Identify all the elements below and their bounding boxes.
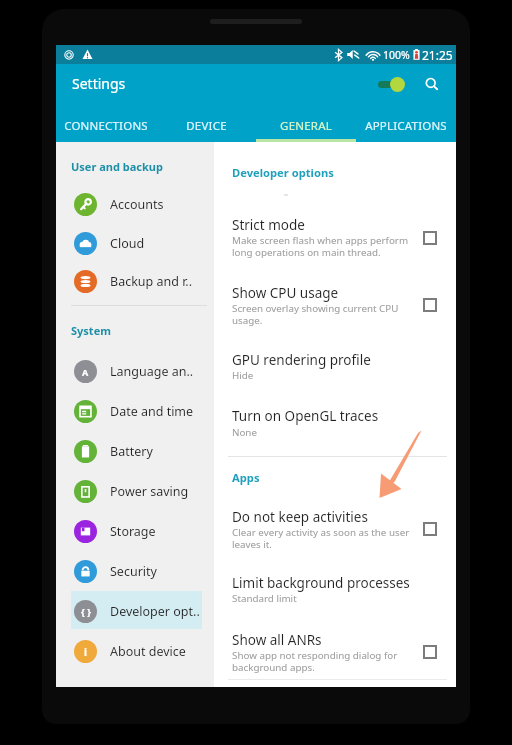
staticText: i: [84, 645, 87, 659]
staticText: Limit background processes: [232, 574, 410, 592]
button[interactable]: Cloud: [56, 224, 214, 262]
button[interactable]: Strict mode: [232, 216, 432, 234]
button[interactable]: APPLICATIONS: [356, 109, 456, 142]
staticText: Date and time: [110, 403, 194, 420]
button[interactable]: Limit background processes: [232, 574, 432, 592]
button[interactable]: Do not keep activities: [232, 508, 432, 526]
staticText: Developer opt..: [110, 603, 200, 620]
button[interactable]: A: [56, 352, 214, 390]
button[interactable]: Date and time: [56, 392, 214, 430]
button[interactable]: Show all ANRs: [423, 645, 437, 659]
button[interactable]: Show CPU usage: [232, 284, 432, 302]
button[interactable]: Show all ANRs: [232, 631, 432, 649]
staticText: None: [232, 426, 257, 439]
staticText: User and backup: [71, 159, 163, 174]
staticText: Settings: [72, 74, 126, 93]
button[interactable]: CONNECTIONS: [56, 109, 156, 142]
button[interactable]: Accounts: [56, 185, 214, 223]
staticText: Do not keep activities: [232, 508, 368, 526]
staticText: A: [82, 366, 89, 378]
staticText: Storage: [110, 523, 156, 540]
staticText: Backup and r..: [110, 273, 193, 290]
button[interactable]: GPU rendering profile: [232, 351, 432, 369]
staticText: Developer options: [232, 165, 334, 180]
staticText: Show app not responding dialog for backg…: [232, 649, 398, 674]
staticText: GENERAL: [280, 118, 332, 134]
staticText: Turn on OpenGL traces: [232, 407, 379, 425]
button[interactable]: Power saving: [56, 472, 214, 510]
staticText: Battery: [110, 443, 153, 460]
button[interactable]: Storage: [56, 512, 214, 550]
button[interactable]: Security: [56, 552, 214, 590]
staticText: Hide: [232, 369, 254, 382]
button[interactable]: { }: [56, 592, 214, 630]
staticText: Screen overlay showing current CPU usage…: [232, 302, 399, 327]
staticText: 21:25: [422, 47, 453, 63]
staticText: Cloud: [110, 235, 145, 252]
staticText: System: [71, 323, 111, 338]
staticText: Security: [110, 563, 157, 580]
button[interactable]: Backup and r..: [56, 262, 214, 300]
staticText: 100%: [383, 48, 410, 62]
button[interactable]: Search: [416, 71, 442, 97]
staticText: Clear every activity as soon as the user…: [232, 526, 410, 551]
staticText: Power saving: [110, 483, 189, 500]
staticText: Show all ANRs: [232, 631, 322, 649]
button[interactable]: GENERAL: [256, 109, 356, 142]
staticText: Apps: [232, 470, 260, 485]
button[interactable]: DEVICE: [156, 109, 256, 142]
button[interactable]: Show CPU usage: [423, 298, 437, 312]
staticText: Language an..: [110, 363, 194, 380]
staticText: APPLICATIONS: [365, 118, 447, 134]
staticText: Make screen flash when apps perform long…: [232, 234, 409, 259]
staticText: Strict mode: [232, 216, 305, 234]
button[interactable]: Strict mode: [423, 231, 437, 245]
staticText: CONNECTIONS: [64, 118, 148, 134]
button[interactable]: Toggle developer options: [372, 71, 414, 97]
button[interactable]: Turn on OpenGL traces: [232, 407, 432, 425]
button[interactable]: Do not keep activities: [423, 522, 437, 536]
staticText: DEVICE: [186, 118, 227, 134]
button[interactable]: Battery: [56, 432, 214, 470]
staticText: About device: [110, 643, 186, 660]
staticText: Accounts: [110, 196, 164, 213]
staticText: Standard limit: [232, 592, 297, 605]
staticText: Show CPU usage: [232, 284, 339, 302]
staticText: { }: [81, 605, 91, 618]
button[interactable]: i: [56, 632, 214, 670]
staticText: GPU rendering profile: [232, 351, 371, 369]
